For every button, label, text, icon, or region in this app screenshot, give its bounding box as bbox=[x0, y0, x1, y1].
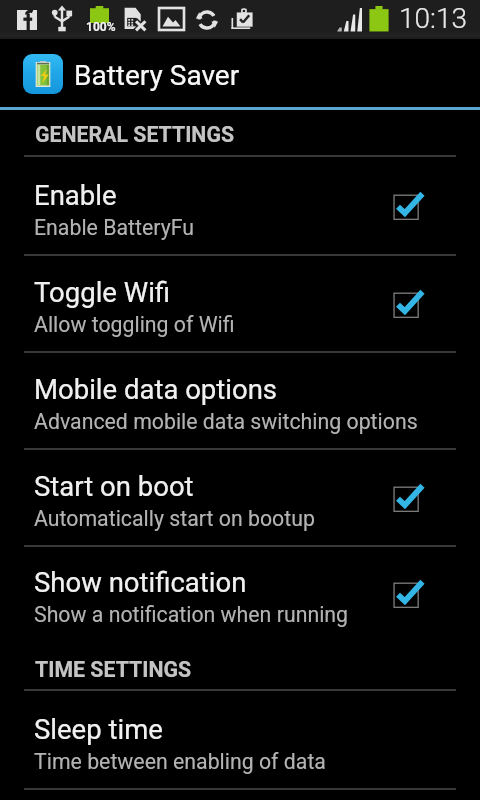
button[interactable]: Sleep time bbox=[0, 690, 480, 789]
staticText: Show a notification when running bbox=[34, 602, 349, 627]
button[interactable]: Toggle setting bbox=[386, 572, 428, 616]
button[interactable]: Start on boot bbox=[0, 449, 480, 546]
staticText: GENERAL SETTINGS bbox=[35, 122, 235, 147]
button[interactable]: Toggle setting bbox=[386, 282, 428, 326]
staticText: TIME SETTINGS bbox=[35, 657, 192, 682]
staticText: 100% bbox=[86, 20, 116, 34]
staticText: 10:13 bbox=[399, 2, 468, 35]
staticText: Enable bbox=[34, 179, 117, 211]
staticText: Sleep time bbox=[34, 713, 163, 745]
button[interactable]: Toggle setting bbox=[386, 184, 428, 228]
staticText: Toggle Wifi bbox=[34, 276, 171, 308]
staticText: Automatically start on bootup bbox=[34, 506, 315, 531]
staticText: Time between enabling of data bbox=[34, 749, 326, 774]
staticText: Battery Saver bbox=[74, 59, 240, 92]
button[interactable]: Toggle Wifi bbox=[0, 255, 480, 352]
staticText: Mobile data options bbox=[34, 373, 278, 405]
button[interactable]: Show notification bbox=[0, 546, 480, 642]
button[interactable]: Toggle setting bbox=[386, 476, 428, 520]
button[interactable]: Enable bbox=[0, 156, 480, 255]
button[interactable]: Mobile data options bbox=[0, 352, 480, 449]
staticText: Advanced mobile data switching options bbox=[34, 409, 418, 434]
staticText: Allow toggling of Wifi bbox=[34, 312, 235, 337]
staticText: Start on boot bbox=[34, 470, 194, 502]
staticText: Enable BatteryFu bbox=[34, 215, 195, 240]
staticText: Show notification bbox=[34, 566, 247, 598]
